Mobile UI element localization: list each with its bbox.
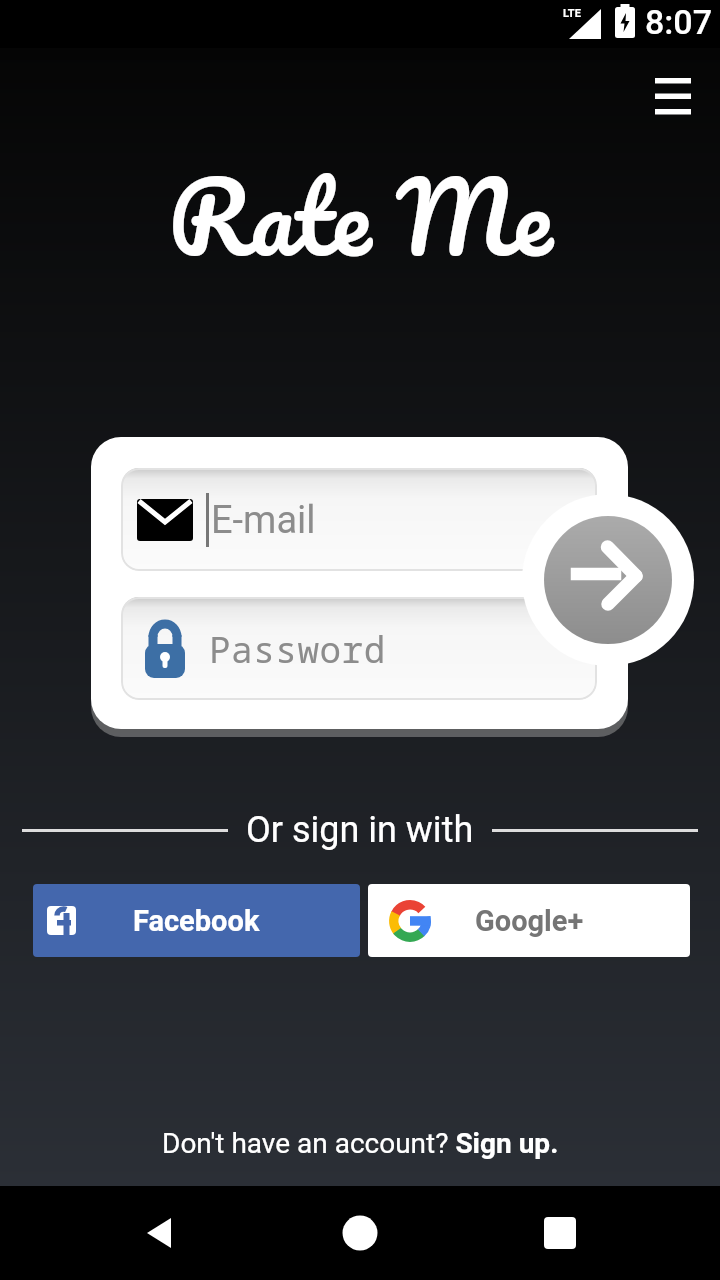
staticText: Google+ bbox=[475, 904, 584, 938]
button[interactable] bbox=[520, 1193, 600, 1273]
staticText: Don't have an account? Sign up. bbox=[162, 1127, 559, 1160]
staticText: Or sign in with bbox=[246, 809, 474, 851]
staticText: Facebook bbox=[133, 904, 260, 938]
staticText: E-mail bbox=[211, 498, 316, 543]
staticText: 8:07 bbox=[645, 2, 712, 42]
button[interactable]: Don't have an account? Sign up. bbox=[0, 1118, 720, 1168]
staticText: LTE bbox=[563, 7, 581, 20]
button[interactable]: Facebook bbox=[33, 884, 360, 957]
button[interactable]: E-mail bbox=[121, 468, 597, 571]
button[interactable]: Google+ bbox=[368, 884, 690, 957]
button[interactable] bbox=[642, 66, 704, 126]
staticText: Rate Me bbox=[168, 132, 552, 299]
staticText: Password bbox=[209, 625, 386, 674]
button[interactable] bbox=[544, 516, 672, 644]
button[interactable]: Password bbox=[121, 597, 597, 700]
button[interactable] bbox=[120, 1193, 200, 1273]
button[interactable] bbox=[320, 1193, 400, 1273]
